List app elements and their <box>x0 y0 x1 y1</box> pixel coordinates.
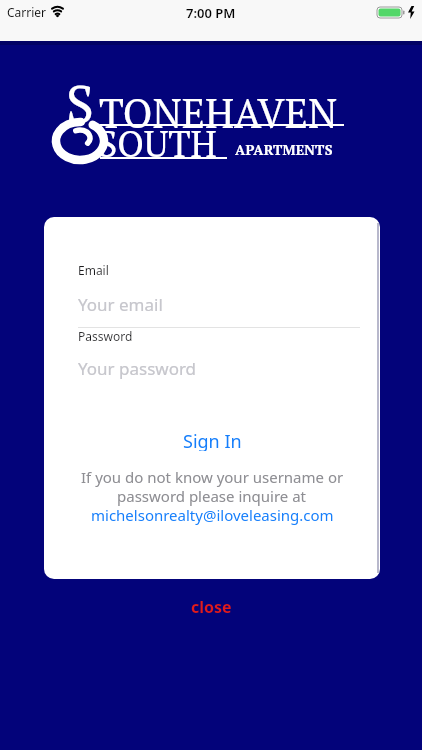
button[interactable]: Your email <box>78 289 360 325</box>
staticText: Carrier <box>7 4 47 20</box>
staticText: APARTMENTS <box>235 140 333 159</box>
button[interactable]: Sign In <box>44 429 380 451</box>
staticText: password please inquire at <box>117 486 307 506</box>
button[interactable]: close <box>191 596 232 618</box>
staticText: Password <box>78 328 133 344</box>
button[interactable]: Your password <box>78 353 360 389</box>
staticText: TONEHAVEN <box>99 86 338 139</box>
staticText: Your password <box>78 357 197 380</box>
staticText: If you do not know your username or <box>81 467 344 487</box>
staticText: SOUTH <box>98 120 217 168</box>
staticText: Your email <box>78 293 163 316</box>
staticText: S <box>66 69 94 138</box>
staticText: Sign In <box>183 429 242 451</box>
button[interactable]: michelsonrealty@iloveleasing.com <box>91 505 334 525</box>
staticText: Email <box>78 262 109 278</box>
staticText: 7:00 PM <box>186 4 236 22</box>
